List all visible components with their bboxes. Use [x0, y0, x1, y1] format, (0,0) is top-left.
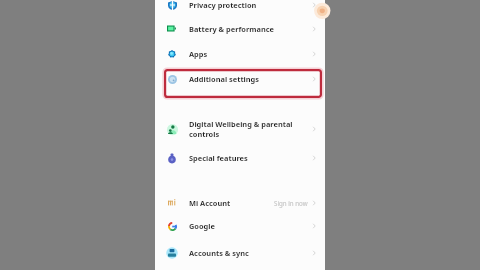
button[interactable]: Digital Wellbeing & parental controls: [155, 117, 325, 141]
staticText: Google: [189, 221, 215, 231]
other: Touch indicator: [314, 2, 325, 19]
button[interactable]: Apps: [155, 42, 325, 66]
button[interactable]: Additional settings: [155, 67, 325, 91]
staticText: Accounts & sync: [189, 248, 249, 258]
staticText: Sign in now: [274, 199, 308, 207]
staticText: Apps: [189, 49, 208, 59]
staticText: Battery & performance: [189, 24, 274, 34]
staticText: Special features: [189, 153, 248, 163]
button[interactable]: Privacy protection: [155, 0, 325, 17]
button[interactable]: Special features: [155, 146, 325, 170]
staticText: Mi Account: [189, 198, 231, 208]
staticText: Additional settings: [189, 74, 259, 84]
button[interactable]: Battery & performance: [155, 17, 325, 41]
staticText: Digital Wellbeing & parental controls: [189, 119, 293, 139]
staticText: Privacy protection: [189, 0, 257, 10]
button[interactable]: Google: [155, 214, 325, 238]
button[interactable]: Accounts & sync: [155, 241, 325, 265]
button[interactable]: Mi Account: [155, 191, 325, 215]
